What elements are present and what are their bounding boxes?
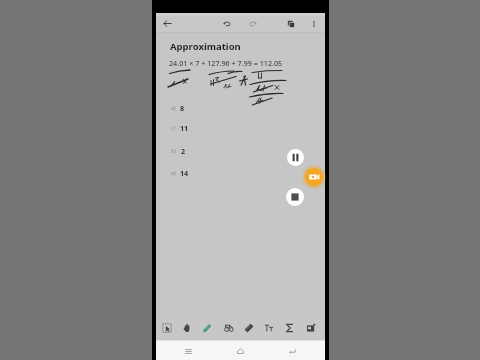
button[interactable]: b) [156,146,325,155]
staticText: 24.01 × 7 + 127.96 + 7.99 = 112.05 [169,58,283,68]
button[interactable]: Camera [305,168,323,186]
button[interactable]: Select [159,320,175,336]
button[interactable]: Undo [222,19,232,29]
button[interactable]: Recent apps [179,342,197,360]
button[interactable]: Formula [282,320,298,336]
staticText: b) [171,147,177,154]
button[interactable]: Back [283,342,301,360]
staticText: 11 [180,123,189,132]
staticText: 2 [181,146,186,155]
staticText: Approximation [170,40,241,53]
button[interactable]: Shapes [221,320,237,336]
button[interactable]: Text [261,320,277,336]
button[interactable]: Insert image [303,320,319,336]
button[interactable]: c) [156,123,325,132]
button[interactable]: Back [162,18,173,29]
button[interactable]: Copy [286,19,296,29]
staticText: c) [171,124,176,131]
button[interactable]: e) [156,168,325,177]
staticText: 8 [180,103,185,112]
button[interactable]: More options [309,19,319,29]
staticText: a) [171,104,176,111]
button[interactable]: Stop recording [286,188,304,206]
staticText: e) [171,169,176,176]
staticText: 14 [180,168,189,177]
button[interactable]: a) [156,103,325,112]
button[interactable]: Pen [199,320,215,336]
button[interactable]: Hand [179,320,195,336]
button[interactable]: Pause recording [287,149,304,166]
button[interactable]: Eraser [241,320,257,336]
button[interactable]: Home [231,342,249,360]
button[interactable]: Redo [248,19,258,29]
